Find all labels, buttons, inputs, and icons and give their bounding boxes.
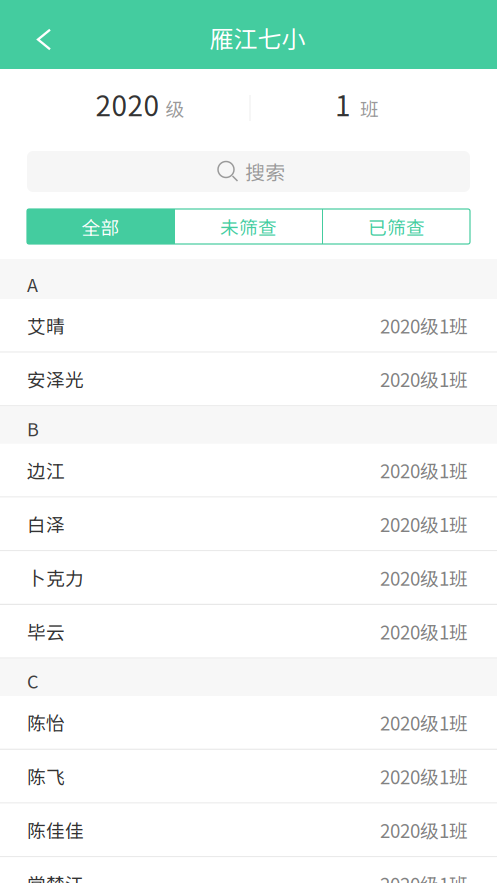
button[interactable]: 陈怡 xyxy=(0,696,497,750)
button[interactable]: 白泽 xyxy=(0,498,497,551)
staticText: 毕云 xyxy=(27,618,65,645)
button[interactable]: 艾晴 xyxy=(0,299,497,353)
button[interactable]: 未筛查 xyxy=(175,209,322,244)
button[interactable]: 安泽光 xyxy=(0,353,497,406)
staticText: 搜索 xyxy=(245,157,285,186)
staticText: 2020级1班 xyxy=(380,618,468,645)
staticText: 安泽光 xyxy=(27,365,84,392)
staticText: 2020级1班 xyxy=(380,564,468,591)
button[interactable]: Back xyxy=(0,0,81,69)
staticText: 陈飞 xyxy=(27,763,65,790)
staticText: C xyxy=(27,668,38,694)
staticText: B xyxy=(27,415,39,441)
staticText: 2020级1班 xyxy=(380,816,468,843)
staticText: 2020级1班 xyxy=(380,709,468,736)
staticText: 2020级1班 xyxy=(380,312,468,339)
staticText: 班 xyxy=(360,95,379,122)
button[interactable]: 卜克力 xyxy=(0,551,497,605)
button[interactable]: 常楚江 xyxy=(0,857,497,883)
button[interactable]: 陈飞 xyxy=(0,750,497,804)
staticText: 1 xyxy=(335,84,351,124)
staticText: 2020级1班 xyxy=(380,510,468,537)
staticText: 全部 xyxy=(81,213,119,240)
button[interactable]: 全部 xyxy=(27,209,174,244)
staticText: 2020级1班 xyxy=(380,457,468,484)
staticText: 雁江七小 xyxy=(209,20,305,55)
staticText: 白泽 xyxy=(27,510,65,537)
staticText: 陈怡 xyxy=(27,709,65,736)
staticText: 2020 xyxy=(95,84,159,124)
staticText: 已筛查 xyxy=(368,213,425,240)
staticText: 未筛查 xyxy=(220,213,277,240)
button[interactable]: 毕云 xyxy=(0,605,497,659)
staticText: 2020级1班 xyxy=(380,870,468,883)
staticText: A xyxy=(27,271,38,297)
button[interactable]: 搜索 xyxy=(27,151,470,192)
staticText: 陈佳佳 xyxy=(27,816,84,843)
staticText: 2020级1班 xyxy=(380,763,468,790)
staticText: 艾晴 xyxy=(27,312,65,339)
staticText: 卜克力 xyxy=(27,564,84,591)
button[interactable]: 边江 xyxy=(0,444,497,498)
staticText: 级 xyxy=(165,95,184,122)
button[interactable]: 已筛查 xyxy=(323,209,470,244)
staticText: 2020级1班 xyxy=(380,365,468,392)
button[interactable]: 2020 xyxy=(0,69,248,151)
staticText: 边江 xyxy=(27,457,65,484)
button[interactable]: 1 xyxy=(249,69,497,151)
staticText: 常楚江 xyxy=(27,870,84,883)
button[interactable]: 陈佳佳 xyxy=(0,804,497,857)
